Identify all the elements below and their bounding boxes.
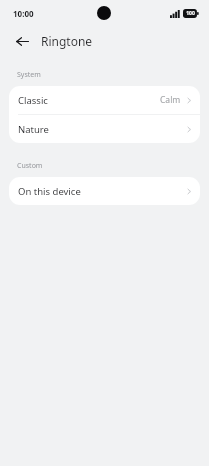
staticText: Custom (17, 161, 43, 171)
staticText: System (17, 70, 41, 80)
button[interactable]: Back (12, 31, 32, 51)
staticText: 100 (186, 10, 195, 17)
staticText: Ringtone (41, 33, 93, 49)
button[interactable]: Nature (9, 115, 200, 143)
staticText: On this device (18, 185, 81, 198)
staticText: Nature (18, 123, 49, 136)
button[interactable]: On this device (9, 177, 200, 205)
staticText: Calm (160, 94, 181, 106)
staticText: 10:00 (13, 8, 34, 19)
staticText: Classic (18, 94, 48, 107)
button[interactable]: Classic (9, 86, 200, 114)
